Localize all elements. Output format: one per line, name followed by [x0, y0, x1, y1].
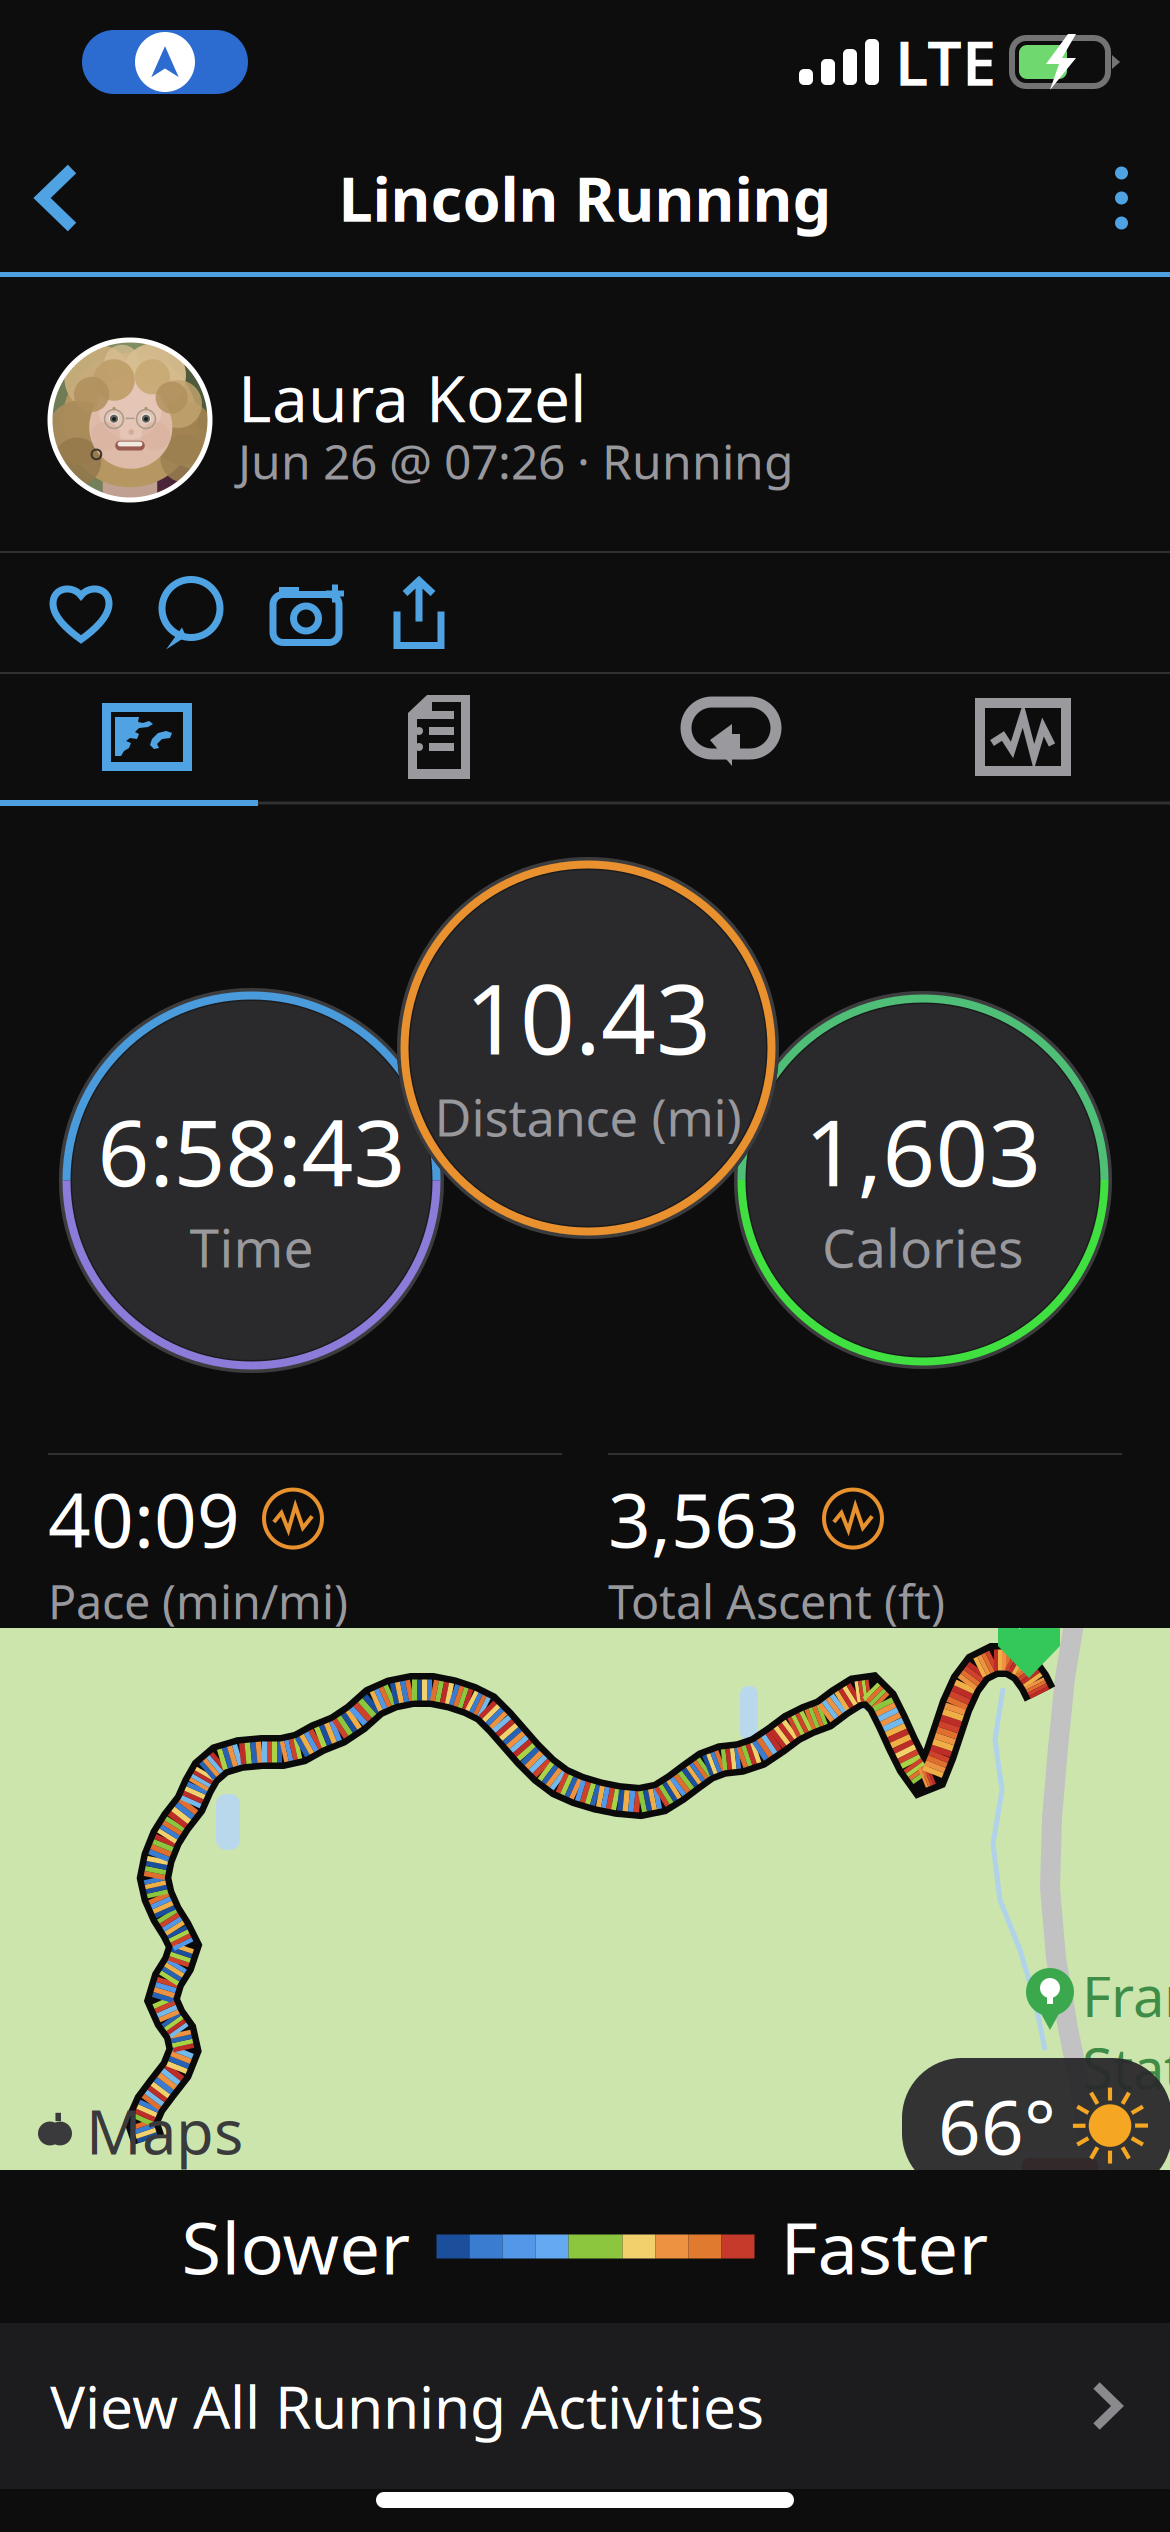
button[interactable]: Like	[26, 560, 136, 664]
staticText: Total Ascent (ft)	[608, 1570, 945, 1632]
staticText: 40:09	[48, 1469, 240, 1568]
button[interactable]: View All Running Activities	[0, 2323, 1170, 2489]
staticText: LTE	[895, 21, 996, 103]
staticText: Franc	[1082, 1958, 1170, 2032]
staticText: View All Running Activities	[50, 2367, 764, 2445]
staticText: 66°	[938, 2076, 1056, 2175]
staticText: Slower	[181, 2199, 410, 2294]
button[interactable]: Share	[366, 559, 472, 665]
staticText: Pace (min/mi)	[48, 1570, 348, 1632]
staticText: State	[1082, 2030, 1170, 2105]
button[interactable]: Map	[1, 674, 293, 800]
button[interactable]: Charts	[877, 674, 1169, 800]
staticText: Jun 26 @ 07:26 · Running	[238, 429, 794, 493]
button[interactable]: Comment	[136, 559, 246, 665]
staticText: 6:58:43	[97, 1091, 405, 1211]
button[interactable]: Laps	[585, 674, 877, 800]
staticText: 1,603	[804, 1089, 1041, 1212]
staticText: Time	[189, 1211, 313, 1282]
staticText: Laura Kozel	[238, 355, 587, 440]
staticText: Lincoln Running	[338, 157, 831, 239]
staticText: Calories	[822, 1212, 1024, 1282]
staticText: 3,563	[608, 1469, 800, 1568]
button[interactable]: Summary	[293, 674, 585, 800]
staticText: Faster	[780, 2199, 988, 2294]
button[interactable]: More options	[1073, 136, 1170, 259]
staticText: Maps	[86, 2090, 243, 2171]
button[interactable]: Back	[0, 131, 114, 265]
button[interactable]: Add photo	[246, 559, 366, 665]
staticText: 10.43	[465, 954, 711, 1081]
staticText: Distance (mi)	[434, 1083, 741, 1150]
